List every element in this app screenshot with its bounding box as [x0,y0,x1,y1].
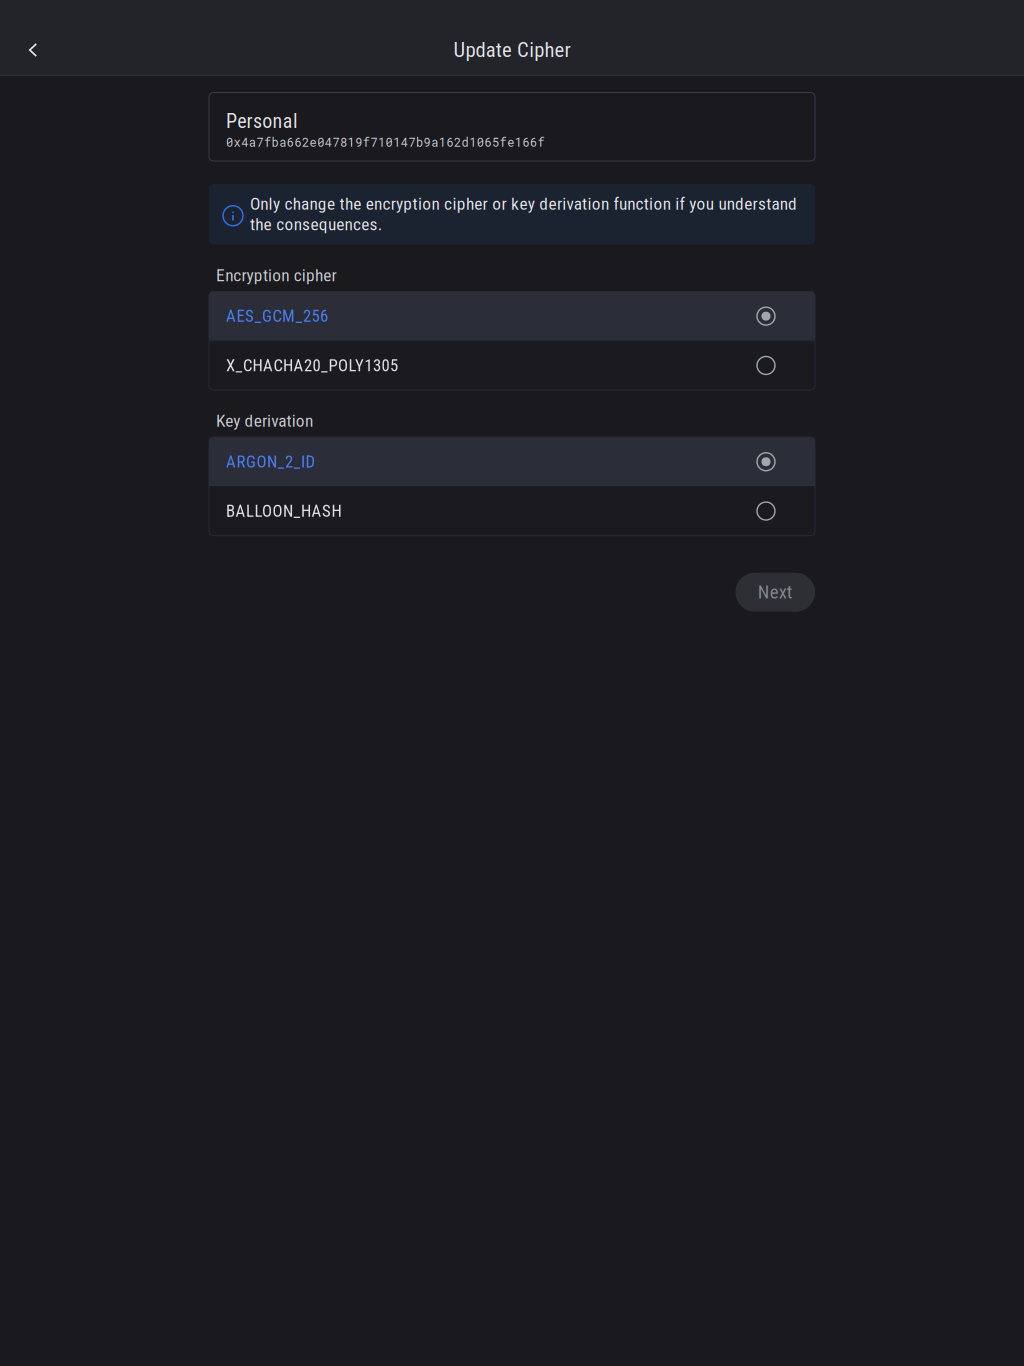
staticText: ARGON_2_ID [226,452,315,471]
staticText: AES_GCM_256 [226,306,328,326]
staticText: X_CHACHA20_POLY1305 [226,356,398,375]
button[interactable]: X_CHACHA20_POLY1305 [209,341,815,390]
staticText: Only change the encryption cipher or key… [250,194,797,234]
staticText: Key derivation [216,411,313,431]
staticText: 0x4a7fba662e047819f710147b9a162d1065fe16… [226,134,545,150]
button[interactable]: Back [11,25,55,75]
staticText: Update Cipher [453,38,571,62]
staticText: BALLOON_HASH [226,501,341,521]
staticText: Personal [226,110,298,133]
button[interactable]: BALLOON_HASH [209,486,815,536]
button[interactable]: Next [735,573,815,612]
staticText: Next [758,581,793,603]
button[interactable]: ARGON_2_ID [209,437,815,486]
button[interactable]: AES_GCM_256 [209,291,815,341]
staticText: Encryption cipher [216,265,336,285]
